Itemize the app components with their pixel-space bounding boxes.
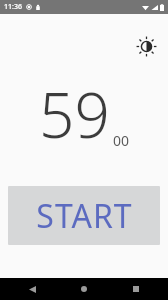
button[interactable]: Back bbox=[12, 278, 52, 300]
staticText: 00 bbox=[113, 131, 130, 150]
button[interactable]: Home bbox=[64, 278, 104, 300]
staticText: 59 bbox=[39, 72, 110, 156]
button[interactable]: Toggle brightness bbox=[128, 28, 164, 64]
staticText: 11:36 bbox=[4, 2, 22, 12]
staticText: START bbox=[36, 194, 133, 238]
button[interactable]: Recent apps bbox=[116, 278, 156, 300]
button[interactable]: START bbox=[8, 186, 160, 245]
